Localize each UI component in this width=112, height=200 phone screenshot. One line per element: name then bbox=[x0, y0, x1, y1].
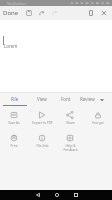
staticText: Review bbox=[80, 96, 95, 102]
staticText: Save As bbox=[8, 121, 20, 125]
staticText: Export to PDF bbox=[32, 121, 53, 125]
staticText: File bbox=[11, 96, 19, 102]
staticText: Help & Feedback bbox=[63, 144, 78, 152]
staticText: Share bbox=[66, 121, 75, 125]
button[interactable]: Export to PDF bbox=[28, 111, 56, 125]
button[interactable]: Save As bbox=[0, 111, 28, 125]
staticText: Notification bbox=[7, 1, 26, 6]
button[interactable]: Undo bbox=[35, 6, 48, 20]
staticText: Encrypt bbox=[92, 121, 104, 125]
button[interactable]: Home bbox=[51, 190, 62, 200]
button[interactable]: Font bbox=[55, 93, 77, 105]
staticText: Print bbox=[10, 144, 18, 148]
staticText: Done bbox=[3, 9, 19, 17]
button[interactable]: Copy bbox=[84, 6, 97, 20]
button[interactable]: Recents bbox=[70, 190, 81, 200]
staticText: View bbox=[37, 96, 47, 102]
button[interactable]: Save bbox=[22, 6, 35, 20]
button[interactable]: File bbox=[0, 93, 29, 106]
button[interactable]: Close bbox=[97, 6, 110, 20]
button[interactable]: Done bbox=[0, 6, 22, 20]
button[interactable]: View bbox=[29, 93, 55, 105]
button[interactable]: Print bbox=[0, 134, 28, 148]
button[interactable]: File Info bbox=[28, 134, 56, 148]
button[interactable]: Encrypt bbox=[84, 111, 112, 125]
button[interactable]: Help & Feedback bbox=[56, 134, 84, 152]
button[interactable]: Review bbox=[77, 93, 97, 105]
button[interactable]: Share bbox=[56, 111, 84, 125]
button[interactable]: Redo bbox=[48, 6, 61, 20]
staticText: Font bbox=[61, 96, 71, 102]
button[interactable]: Back bbox=[32, 190, 43, 200]
button[interactable]: Expand ribbon bbox=[96, 94, 108, 106]
staticText: Lorem bbox=[4, 43, 18, 49]
staticText: File Info bbox=[36, 144, 49, 148]
